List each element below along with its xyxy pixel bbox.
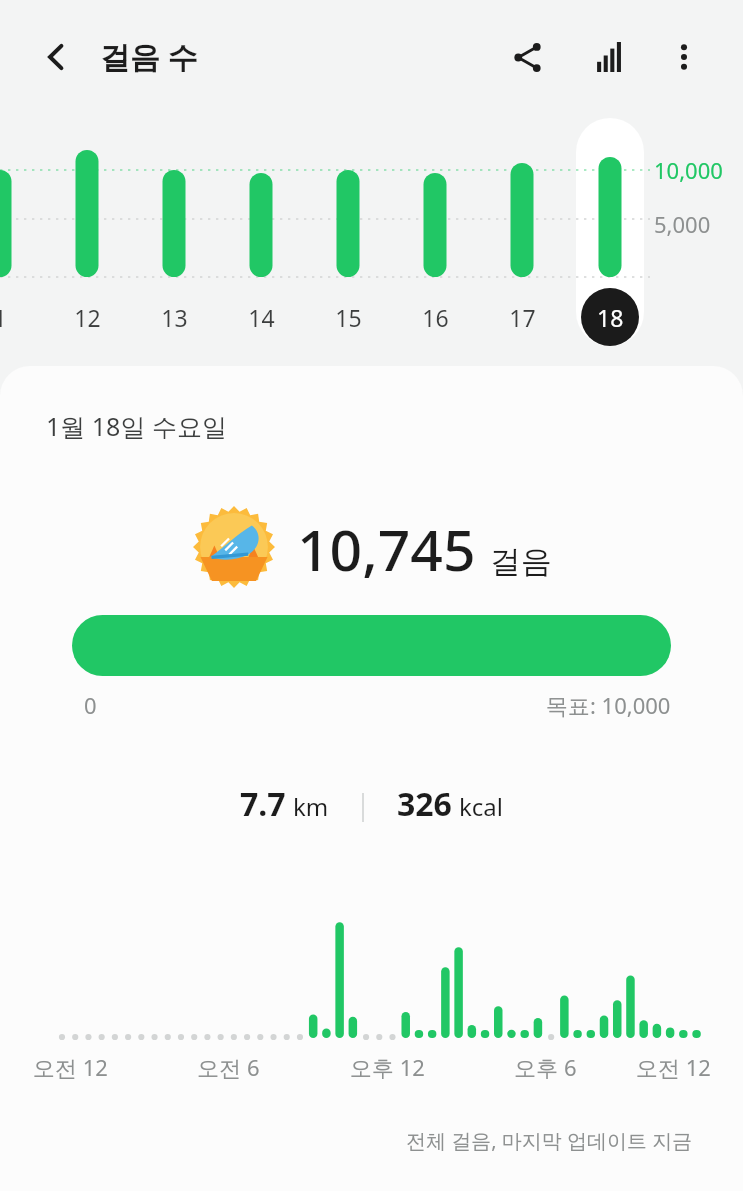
staticText: 1 (0, 302, 7, 333)
staticText: 14 (248, 302, 275, 333)
staticText: 오전 6 (197, 1052, 260, 1082)
staticText: 오후 6 (514, 1052, 577, 1082)
staticText: 7.7 (240, 782, 286, 826)
staticText: 15 (335, 302, 362, 333)
staticText: 12 (74, 302, 101, 333)
staticText: 16 (422, 302, 449, 333)
staticText: 10,000 (654, 155, 723, 185)
staticText: 0 (84, 690, 97, 720)
button[interactable] (72, 615, 671, 676)
staticText: 1월 18일 수요일 (46, 409, 227, 443)
staticText: 오전 12 (33, 1052, 108, 1082)
staticText: 걸음 수 (100, 36, 198, 77)
staticText: 18 (597, 302, 624, 333)
staticText: 걸음 (490, 542, 552, 581)
staticText: 5,000 (654, 209, 711, 239)
button[interactable] (576, 118, 644, 346)
button[interactable]: Chart view (582, 29, 638, 85)
button[interactable]: Back (28, 29, 84, 85)
staticText: 10,745 (297, 510, 476, 588)
staticText: 오전 12 (636, 1052, 711, 1082)
staticText: 13 (161, 302, 188, 333)
staticText: km (293, 790, 329, 823)
staticText: 오후 12 (350, 1052, 425, 1082)
staticText: kcal (459, 790, 503, 823)
button[interactable]: More options (656, 29, 712, 85)
staticText: 17 (509, 302, 536, 333)
staticText: 목표: 10,000 (546, 690, 671, 720)
button[interactable]: Share (499, 29, 555, 85)
staticText: 전체 걸음, 마지막 업데이트 지금 (406, 1127, 693, 1154)
staticText: 326 (397, 782, 452, 826)
